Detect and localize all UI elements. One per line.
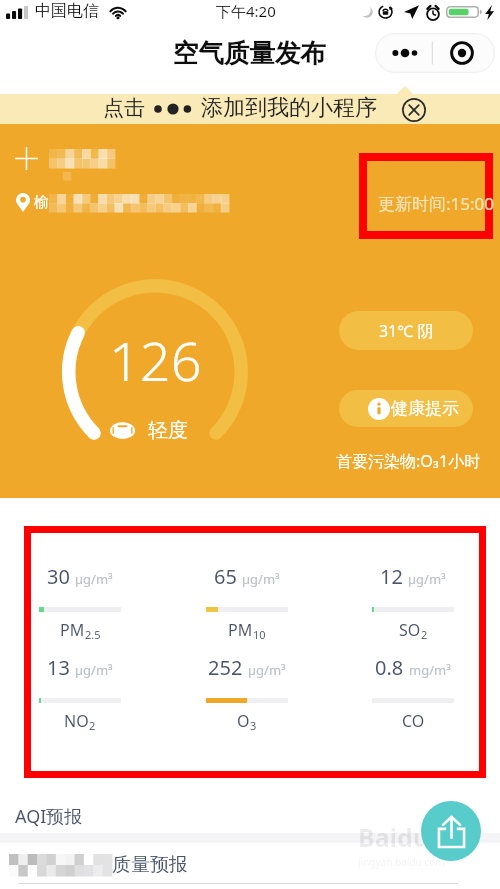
staticText: Baidu — [358, 820, 430, 854]
staticText: 2 — [89, 718, 96, 733]
staticText: 下午4:20 — [216, 1, 276, 21]
button[interactable]: 点击 — [0, 94, 500, 124]
staticText: 0.8 — [375, 654, 404, 681]
button[interactable]: 31℃ 阴 — [339, 311, 473, 350]
staticText: 2 — [421, 627, 428, 642]
staticText: CO — [402, 710, 425, 732]
button[interactable]: More options — [375, 33, 495, 73]
staticText: µg/m³ — [75, 661, 113, 679]
staticText: AQI预报 — [15, 804, 83, 829]
button[interactable]: AQI预报 — [0, 796, 500, 836]
staticText: 添加到我的小程序 — [201, 94, 377, 122]
staticText: µg/m³ — [408, 570, 446, 588]
staticText: 健康提示 — [391, 398, 459, 419]
staticText: µg/m³ — [248, 661, 286, 679]
staticText: 30 — [47, 563, 70, 590]
button[interactable]: 13 — [39, 654, 121, 732]
staticText: 首要污染物:O — [336, 450, 433, 472]
button[interactable]: 0.8 — [372, 654, 454, 732]
staticText: 更新时间:15:00 — [378, 192, 495, 215]
staticText: PM — [60, 619, 85, 641]
staticText: µg/m³ — [75, 570, 113, 588]
staticText: jingyan.baidu.com — [358, 855, 445, 869]
staticText: O — [237, 710, 250, 732]
button[interactable]: 252 — [206, 654, 288, 732]
staticText: 榆 — [34, 193, 49, 212]
staticText: 2.5 — [85, 627, 101, 642]
staticText: 65 — [214, 563, 237, 590]
staticText: 空气质量发布 — [173, 37, 326, 69]
staticText: 12 — [380, 563, 403, 590]
staticText: ₃ — [433, 449, 439, 471]
staticText: PM — [228, 619, 253, 641]
staticText: 中国电信 — [35, 1, 99, 21]
button[interactable]: Close banner — [401, 97, 426, 122]
staticText: 3 — [250, 718, 257, 733]
staticText: SO — [399, 619, 421, 641]
staticText: µg/m³ — [242, 570, 280, 588]
button[interactable]: Share — [421, 801, 481, 861]
staticText: NO — [64, 710, 89, 732]
staticText: 13 — [47, 654, 70, 681]
staticText: 31℃ 阴 — [379, 320, 434, 342]
staticText: mg/m³ — [409, 661, 451, 679]
staticText: 经验 — [433, 825, 473, 850]
button[interactable]: 30 — [39, 563, 121, 641]
staticText: 1小时 — [439, 450, 481, 472]
staticText: 126 — [109, 323, 202, 397]
button[interactable]: 健康提示 — [339, 390, 473, 427]
staticText: 252 — [208, 654, 243, 681]
button[interactable]: 12 — [372, 563, 454, 641]
button[interactable]: 65 — [206, 563, 288, 641]
staticText: 轻度 — [148, 418, 188, 443]
staticText: 10 — [253, 627, 266, 642]
staticText: 质量预报 — [112, 853, 188, 877]
staticText: 点击 — [103, 95, 145, 121]
